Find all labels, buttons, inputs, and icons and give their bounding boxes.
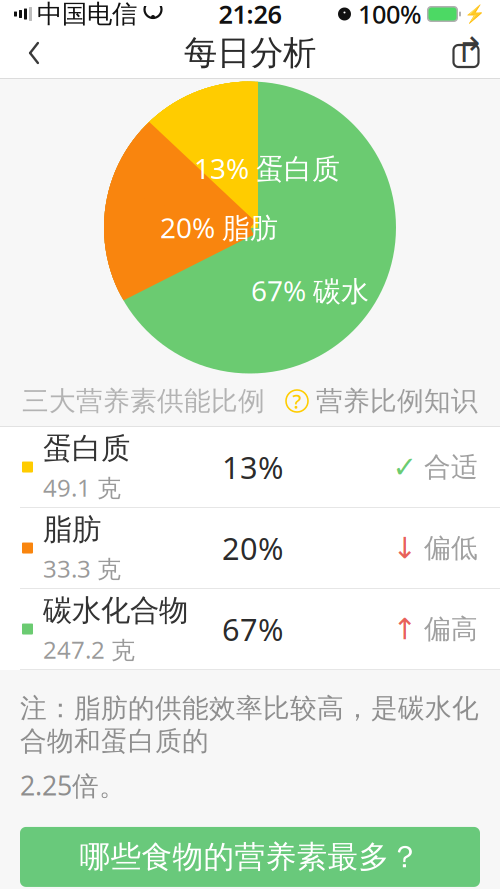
staticText: ↱ [455,30,484,70]
staticText: 偏高 [424,613,478,645]
staticText: ↑ [392,612,417,646]
button[interactable]: 碳水化合物 [0,589,500,669]
staticText: 2.25倍。 [20,767,126,803]
staticText: 13% 蛋白质 [194,149,340,187]
staticText: 每日分析 [184,32,316,73]
staticText: 67% 碳水 [251,272,369,309]
staticText: 脂肪 [43,511,101,547]
staticText: 33.3 克 [43,553,121,584]
staticText: ? [292,388,301,414]
button[interactable]: 返回 [6,28,62,78]
staticText: 49.1 克 [43,472,121,503]
button[interactable]: 分享 [438,28,494,78]
staticText: 20% 脂肪 [160,209,278,246]
staticText: 偏低 [424,532,478,564]
staticText: 营养比例知识 [316,385,478,417]
staticText: 哪些食物的营养素最多？ [79,838,420,876]
button[interactable]: 哪些食物的营养素最多？ [20,827,480,887]
button[interactable]: ? [286,379,478,423]
staticText: 注：脂肪的供能效率比较高，是碳水化合物和蛋白质的 [20,692,479,757]
staticText: ✓ [392,450,417,484]
staticText: 13% [222,447,283,487]
staticText: 三大营养素供能比例 [22,385,265,417]
staticText: 100% [358,0,422,31]
staticText: 中国电信 [37,0,137,29]
button[interactable]: 蛋白质 [0,427,500,507]
staticText: 蛋白质 [43,430,130,466]
button[interactable]: 脂肪 [0,508,500,588]
staticText: 碳水化合物 [43,592,188,628]
staticText: 21:26 [218,0,281,31]
staticText: 247.2 克 [43,634,135,665]
staticText: ↓ [392,531,417,565]
staticText: 67% [222,609,283,649]
staticText: ⚡ [464,4,486,24]
staticText: 20% [222,528,283,568]
staticText: 合适 [424,451,478,483]
